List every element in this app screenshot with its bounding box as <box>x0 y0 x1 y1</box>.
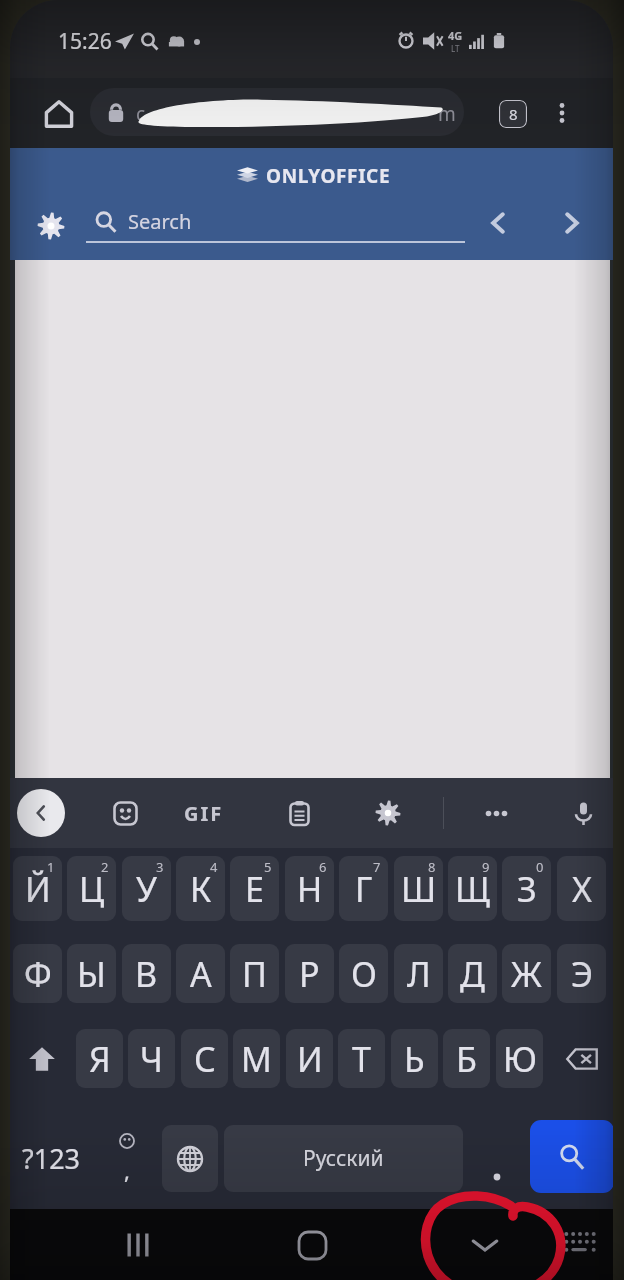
staticText: , <box>124 1155 130 1185</box>
button[interactable]: Н <box>285 856 334 921</box>
staticText: 1 <box>47 858 55 876</box>
button[interactable]: Щ <box>448 856 497 921</box>
button[interactable]: Е <box>230 856 279 921</box>
button[interactable]: А <box>176 944 225 1003</box>
staticText: 4 <box>210 858 218 876</box>
button[interactable]: Й <box>13 856 62 921</box>
button[interactable]: Stickers <box>102 790 148 836</box>
button[interactable]: И <box>286 1029 333 1088</box>
button[interactable]: С <box>181 1029 228 1088</box>
staticText: Ж <box>511 951 542 997</box>
staticText: Б <box>456 1036 477 1082</box>
button[interactable]: О <box>339 944 388 1003</box>
staticText: Search <box>128 208 192 235</box>
staticText: Т <box>352 1036 371 1082</box>
staticText: 0 <box>536 858 544 876</box>
staticText: Н <box>297 866 323 912</box>
staticText: Ц <box>79 866 105 912</box>
staticText: 8 <box>428 858 436 876</box>
button[interactable]: ?123 <box>11 1125 91 1192</box>
staticText: К <box>190 866 212 912</box>
staticText: 6 <box>319 858 327 876</box>
button[interactable]: Home <box>288 1221 336 1269</box>
button[interactable]: Next <box>550 201 594 245</box>
button[interactable]: Voice input <box>560 790 606 836</box>
staticText: m <box>438 101 456 127</box>
staticText: В <box>135 951 158 997</box>
staticText: Г <box>355 866 373 912</box>
button[interactable]: Tabs <box>488 89 538 139</box>
button[interactable]: В <box>122 944 171 1003</box>
button[interactable]: Settings <box>31 206 71 246</box>
staticText: У <box>136 866 157 912</box>
staticText: 7 <box>373 858 381 876</box>
staticText: Русский <box>303 1144 384 1173</box>
button[interactable]: Д <box>448 944 497 1003</box>
button[interactable]: З <box>502 856 551 921</box>
staticText: И <box>297 1036 323 1082</box>
button[interactable]: Э <box>557 944 606 1003</box>
staticText: Щ <box>455 866 490 912</box>
button[interactable]: Я <box>76 1029 123 1088</box>
staticText: Д <box>460 951 485 997</box>
button[interactable]: П <box>230 944 279 1003</box>
button[interactable]: Backspace <box>553 1029 611 1088</box>
button[interactable]: Emoji and comma <box>99 1125 155 1192</box>
staticText: Ч <box>140 1036 163 1082</box>
button[interactable]: Ф <box>13 944 62 1003</box>
button[interactable]: Clipboard <box>276 790 322 836</box>
button[interactable]: К <box>176 856 225 921</box>
staticText: 3 <box>156 858 164 876</box>
staticText: Ы <box>77 951 106 997</box>
button[interactable]: GIF <box>180 789 228 837</box>
button[interactable]: Previous <box>476 201 520 245</box>
button[interactable]: Ц <box>67 856 116 921</box>
button[interactable]: Ы <box>67 944 116 1003</box>
button[interactable]: Recents <box>114 1221 162 1269</box>
button[interactable]: Search <box>530 1120 613 1193</box>
button[interactable]: Б <box>443 1029 490 1088</box>
button[interactable]: Ь <box>391 1029 438 1088</box>
staticText: 15:26 <box>58 27 112 56</box>
staticText: 4G <box>448 28 463 43</box>
staticText: Л <box>407 951 431 997</box>
button[interactable]: Л <box>394 944 443 1003</box>
button[interactable]: У <box>122 856 171 921</box>
button[interactable]: Г <box>339 856 388 921</box>
staticText: Ш <box>401 866 437 912</box>
button[interactable]: Address bar <box>90 88 464 136</box>
button[interactable]: More options <box>538 89 586 137</box>
staticText: ?123 <box>22 1140 81 1177</box>
staticText: Р <box>299 951 320 997</box>
button[interactable]: Home <box>35 90 83 138</box>
staticText: Ф <box>24 951 52 997</box>
button[interactable]: Change language <box>162 1125 218 1192</box>
button[interactable]: Т <box>338 1029 385 1088</box>
staticText: Й <box>25 866 51 912</box>
staticText: GIF <box>184 800 224 827</box>
staticText: 9 <box>482 858 490 876</box>
button[interactable]: Keyboard <box>560 1224 600 1264</box>
button[interactable]: Keyboard settings <box>364 789 412 837</box>
button[interactable]: More <box>473 790 519 836</box>
staticText: Х <box>572 866 592 912</box>
staticText: З <box>517 866 537 912</box>
button[interactable]: Hide keyboard <box>461 1221 509 1269</box>
button[interactable]: Shift <box>13 1029 71 1088</box>
button[interactable]: Back <box>17 789 65 837</box>
staticText: c <box>136 101 146 127</box>
button[interactable]: М <box>233 1029 280 1088</box>
button[interactable]: Ш <box>394 856 443 921</box>
button[interactable]: Х <box>557 856 606 921</box>
button[interactable]: Р <box>285 944 334 1003</box>
staticText: С <box>194 1036 216 1082</box>
button[interactable]: Period <box>470 1125 524 1192</box>
staticText: ONLYOFFICE <box>266 163 391 189</box>
staticText: А <box>190 951 212 997</box>
staticText: М <box>241 1036 272 1082</box>
button[interactable]: Ж <box>502 944 551 1003</box>
button[interactable]: Ю <box>496 1029 543 1088</box>
button[interactable]: Ч <box>128 1029 175 1088</box>
staticText: 8 <box>509 104 518 124</box>
button[interactable]: Русский <box>224 1125 463 1192</box>
